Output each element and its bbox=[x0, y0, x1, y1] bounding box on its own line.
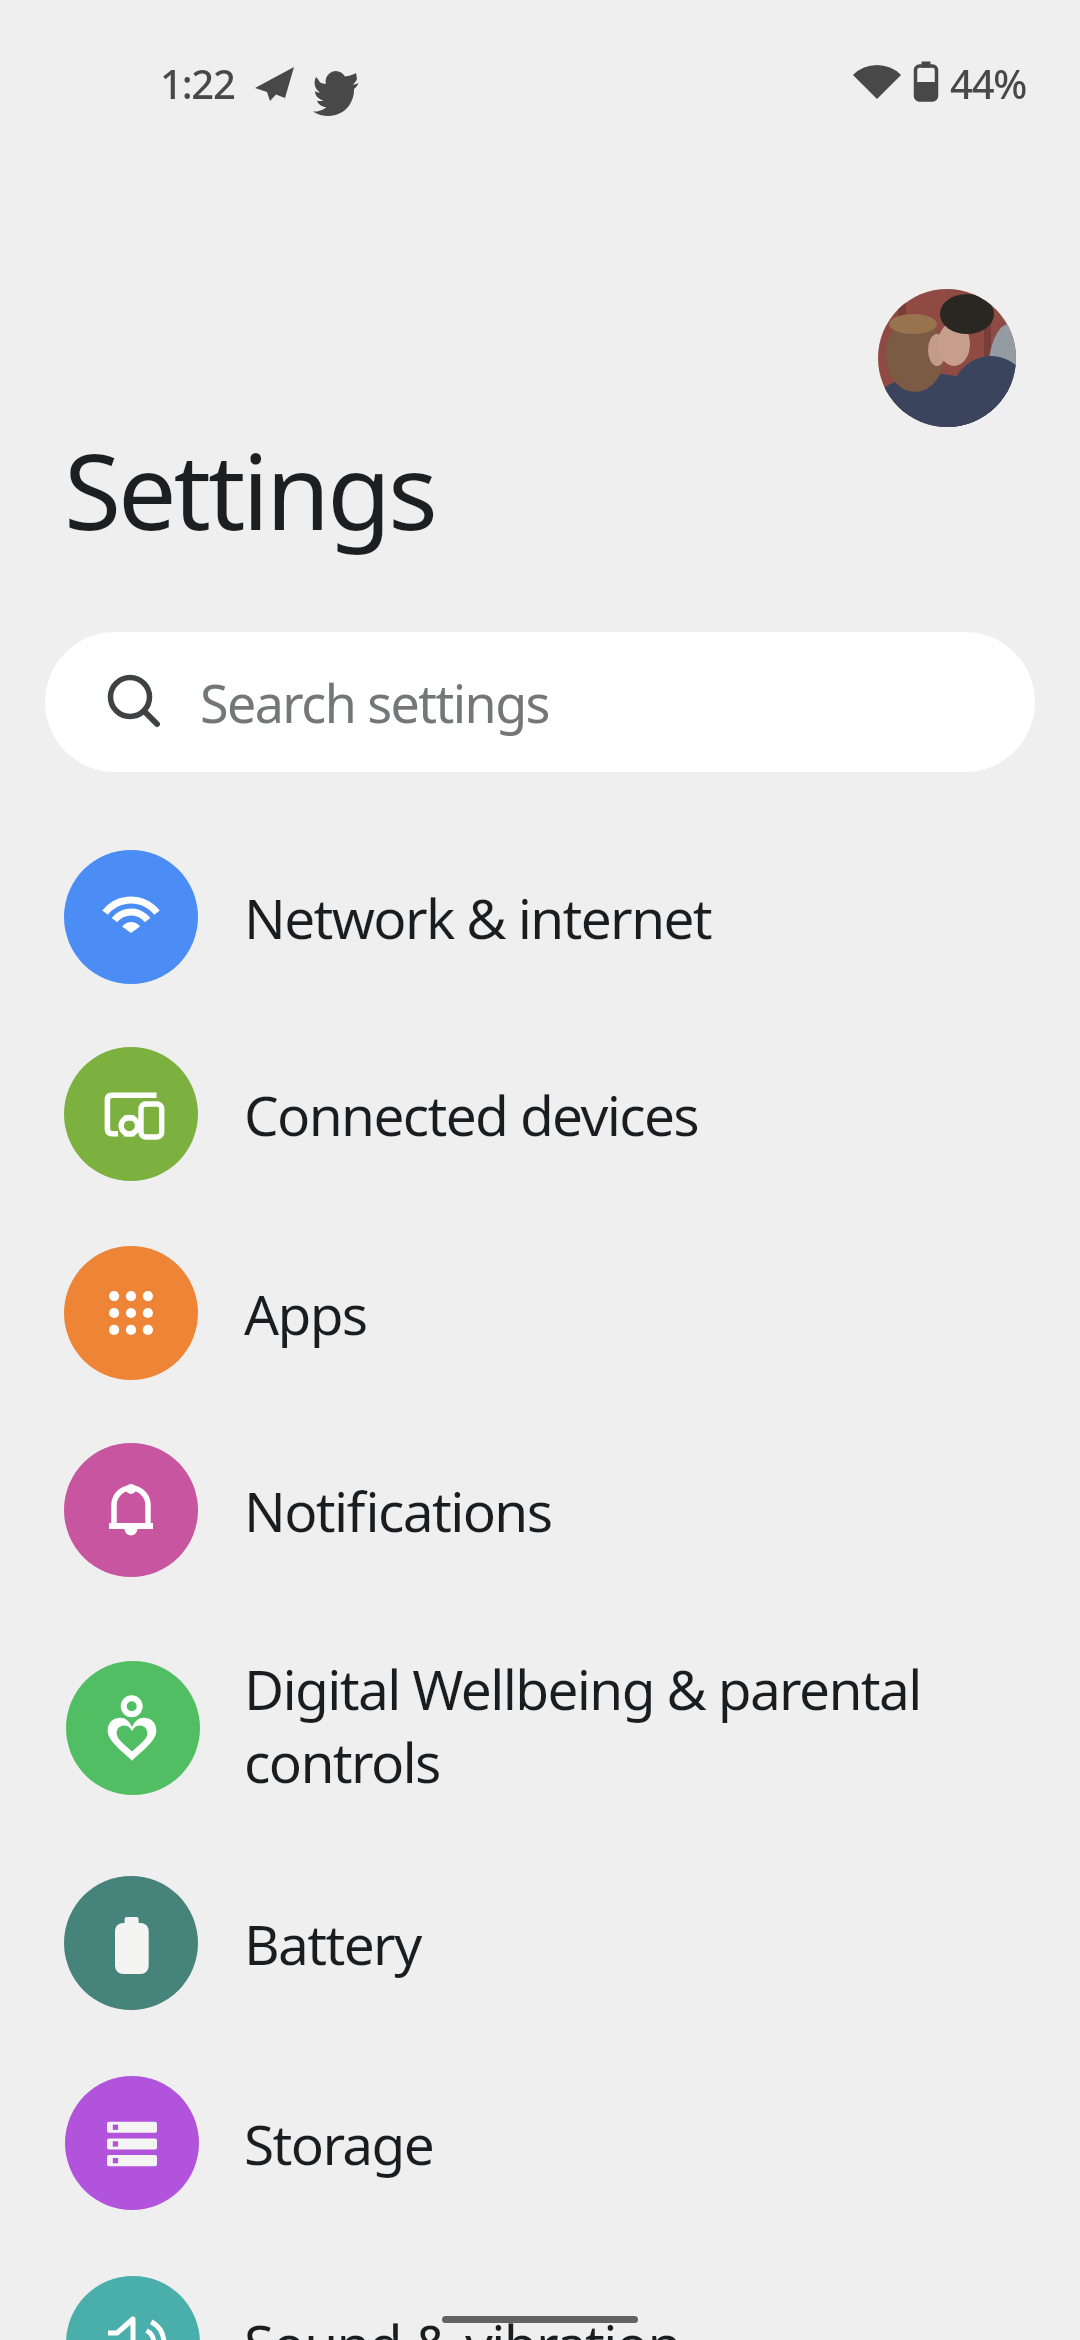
staticText: Search settings bbox=[200, 667, 549, 738]
staticText: Network & internet bbox=[244, 880, 712, 955]
staticText: Storage bbox=[244, 2106, 434, 2181]
staticText: Battery bbox=[244, 1906, 421, 1981]
staticText: Settings bbox=[64, 419, 435, 561]
staticText: Notifications bbox=[244, 1473, 552, 1548]
staticText: Connected devices bbox=[244, 1077, 699, 1152]
staticText: Digital Wellbeing & parental bbox=[244, 1651, 921, 1726]
staticText: Apps bbox=[244, 1276, 367, 1351]
staticText: 1:22 bbox=[160, 56, 235, 110]
staticText: Sound & vibration bbox=[244, 2306, 680, 2340]
staticText: 44% bbox=[950, 56, 1027, 110]
staticText: controls bbox=[244, 1724, 440, 1799]
